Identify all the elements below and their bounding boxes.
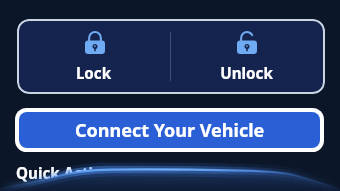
other: Unlock [237, 31, 257, 54]
button[interactable]: Connect Your Vehicle [15, 108, 324, 152]
other: Lock [85, 31, 105, 54]
staticText: Lock [17, 63, 170, 85]
button[interactable]: Lock [17, 19, 170, 94]
staticText: Connect Your Vehicle [75, 118, 265, 143]
staticText: Unlock [170, 63, 323, 85]
staticText: Quick Actions [16, 163, 121, 184]
button[interactable]: Unlock [170, 19, 323, 94]
